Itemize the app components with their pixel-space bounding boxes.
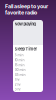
staticText: 1 hr: [15, 77, 20, 82]
staticText: Fall asleep to your: [5, 3, 48, 9]
staticText: 45 min: [15, 73, 26, 77]
staticText: 2 hr: [15, 82, 21, 86]
staticText: 15 min: [15, 63, 25, 67]
staticText: 5 min: [15, 53, 24, 57]
staticText: 30 min: [15, 68, 26, 72]
staticText: 3 hr: [15, 87, 21, 91]
staticText: Now playing: [15, 22, 37, 26]
staticText: favorite radio: [5, 9, 37, 16]
staticText: Sleep Timer: [15, 47, 38, 51]
staticText: 10 min: [15, 58, 25, 62]
